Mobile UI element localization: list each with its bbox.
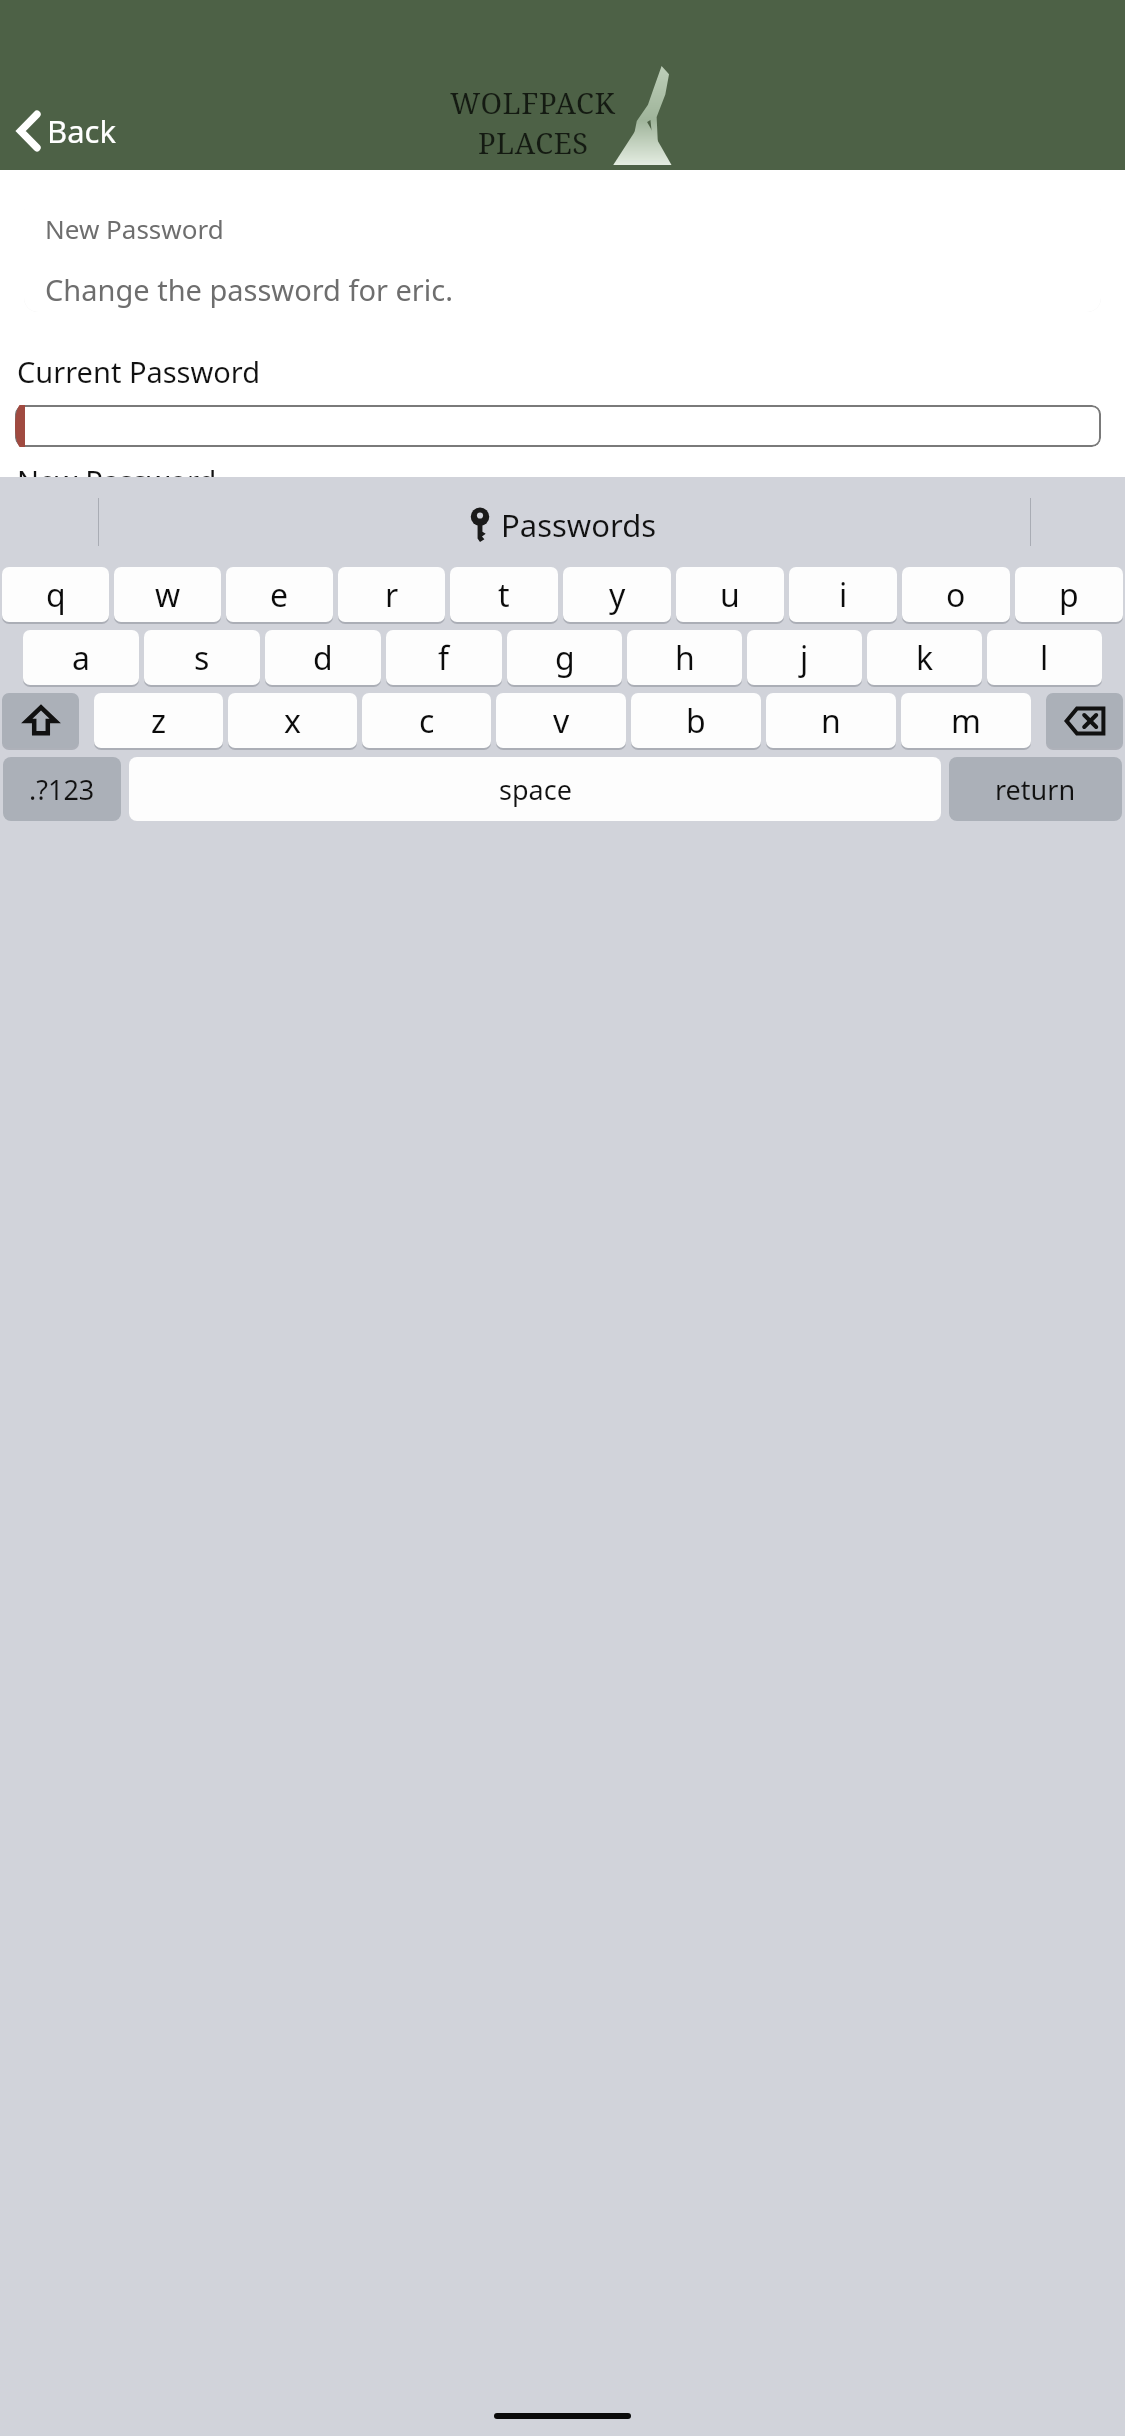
staticText: a xyxy=(72,636,90,680)
staticText: Change the password for eric. xyxy=(45,270,454,309)
staticText: m xyxy=(951,699,981,743)
button[interactable]: d xyxy=(265,630,381,685)
staticText: Confirm New Password xyxy=(17,570,335,609)
staticText: return xyxy=(995,771,1076,808)
staticText: e xyxy=(270,573,289,617)
button[interactable]: i xyxy=(789,567,897,622)
staticText: New Password xyxy=(45,211,224,246)
button[interactable]: k xyxy=(867,630,982,685)
button[interactable]: j xyxy=(747,630,862,685)
button[interactable]: New Password xyxy=(24,197,1101,312)
button[interactable]: f xyxy=(386,630,502,685)
staticText: l xyxy=(1040,636,1049,680)
staticText: i xyxy=(839,573,848,617)
staticText: Passwords xyxy=(501,504,657,546)
button[interactable]: y xyxy=(563,567,671,622)
staticText: f xyxy=(438,636,450,680)
button[interactable] xyxy=(15,623,1101,665)
button[interactable]: s xyxy=(144,630,260,685)
staticText: c xyxy=(419,699,435,743)
button[interactable]: t xyxy=(450,567,558,622)
button[interactable]: Passwords xyxy=(469,504,657,546)
staticText: q xyxy=(46,573,66,617)
button[interactable]: Shift xyxy=(2,693,79,748)
staticText: g xyxy=(555,636,575,680)
button[interactable]: w xyxy=(114,567,221,622)
button[interactable]: m xyxy=(901,693,1031,748)
button[interactable]: .?123 xyxy=(3,757,121,821)
button[interactable] xyxy=(15,405,1101,447)
staticText: Current Password xyxy=(17,352,261,391)
button[interactable]: x xyxy=(228,693,357,748)
button[interactable]: z xyxy=(94,693,223,748)
button[interactable]: return xyxy=(949,757,1122,821)
staticText: y xyxy=(609,573,626,617)
button[interactable]: Back xyxy=(10,104,124,158)
button[interactable]: Backspace xyxy=(1046,693,1123,748)
staticText: p xyxy=(1059,573,1079,617)
button[interactable]: o xyxy=(902,567,1010,622)
staticText: k xyxy=(916,636,934,680)
button[interactable]: r xyxy=(338,567,445,622)
staticText: Back xyxy=(47,110,116,152)
button[interactable]: e xyxy=(226,567,333,622)
staticText: r xyxy=(385,573,399,617)
staticText: x xyxy=(284,699,301,743)
staticText: v xyxy=(553,699,570,743)
button[interactable]: space xyxy=(129,757,941,821)
staticText: New Password xyxy=(17,461,217,500)
staticText: d xyxy=(313,636,333,680)
staticText: w xyxy=(155,573,181,617)
button[interactable]: c xyxy=(362,693,491,748)
staticText: PLACES xyxy=(478,123,589,162)
staticText: z xyxy=(151,699,167,743)
button[interactable]: b xyxy=(631,693,761,748)
button[interactable] xyxy=(15,514,1101,556)
staticText: s xyxy=(194,636,210,680)
staticText: o xyxy=(946,573,966,617)
button[interactable]: p xyxy=(1015,567,1123,622)
button[interactable]: q xyxy=(2,567,109,622)
button[interactable]: a xyxy=(23,630,139,685)
button[interactable]: u xyxy=(676,567,784,622)
button[interactable]: h xyxy=(627,630,742,685)
button[interactable]: n xyxy=(766,693,896,748)
button[interactable]: l xyxy=(987,630,1102,685)
staticText: u xyxy=(720,573,740,617)
staticText: .?123 xyxy=(29,771,95,808)
staticText: n xyxy=(821,699,841,743)
staticText: h xyxy=(675,636,695,680)
button[interactable]: g xyxy=(507,630,622,685)
staticText: b xyxy=(686,699,706,743)
staticText: space xyxy=(499,771,572,808)
staticText: t xyxy=(498,573,510,617)
staticText: j xyxy=(800,636,809,680)
button[interactable]: v xyxy=(496,693,626,748)
staticText: WOLFPACK xyxy=(450,83,616,122)
